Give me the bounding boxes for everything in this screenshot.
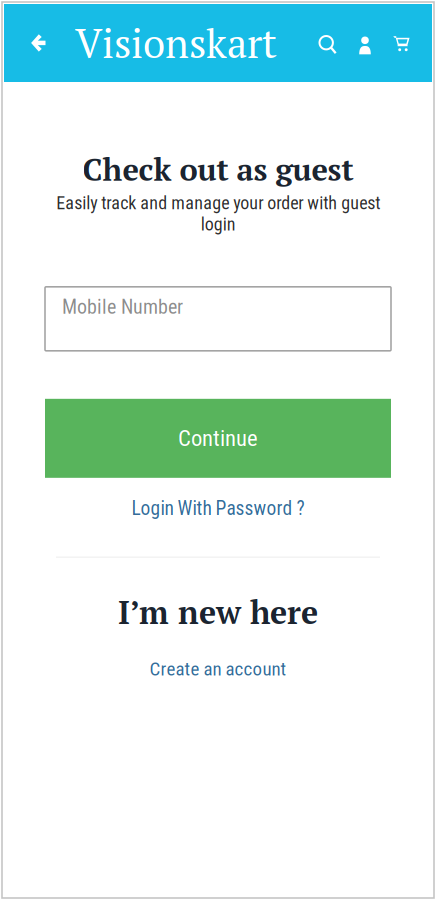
- button[interactable]: Account: [347, 4, 383, 82]
- button[interactable]: Continue: [45, 399, 391, 478]
- staticText: Easily track and manage your order with …: [56, 193, 380, 235]
- button[interactable]: Login With Password ?: [117, 491, 318, 526]
- staticText: Continue: [178, 425, 258, 452]
- staticText: Check out as guest: [82, 149, 353, 190]
- staticText: Mobile Number: [62, 295, 183, 318]
- staticText: Login With Password ?: [131, 497, 304, 520]
- button[interactable]: Search: [309, 4, 347, 82]
- staticText: Visionskart: [75, 16, 277, 69]
- staticText: I’m new here: [118, 591, 318, 633]
- button[interactable]: Create an account: [135, 652, 300, 686]
- staticText: Create an account: [149, 658, 286, 680]
- button[interactable]: Back: [14, 4, 62, 82]
- button[interactable]: Mobile Number: [45, 287, 391, 351]
- button[interactable]: Cart: [383, 4, 420, 82]
